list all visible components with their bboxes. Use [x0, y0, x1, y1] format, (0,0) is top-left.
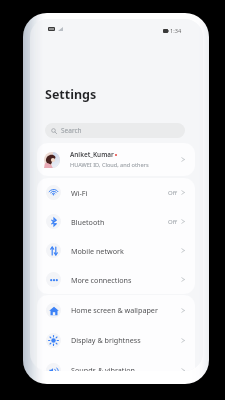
- staticText: HUAWEI ID, Cloud, and others: [70, 161, 149, 169]
- button[interactable]: Sounds & vibration: [37, 355, 195, 371]
- staticText: Display & brightness: [71, 335, 141, 345]
- button[interactable]: More connections: [37, 265, 195, 294]
- button[interactable]: Home screen & wallpaper: [37, 295, 195, 325]
- staticText: 1:34: [170, 27, 182, 35]
- staticText: Home screen & wallpaper: [71, 305, 158, 315]
- staticText: Settings: [45, 86, 97, 103]
- staticText: Off: [168, 218, 177, 226]
- button[interactable]: Aniket_Kumar: [37, 143, 195, 176]
- staticText: More connections: [71, 275, 132, 285]
- staticText: Bluetooth: [71, 217, 105, 227]
- button[interactable]: Wi-Fi: [37, 178, 195, 207]
- staticText: Mobile network: [71, 246, 124, 256]
- button[interactable]: Search: [45, 123, 185, 138]
- staticText: Sounds & vibration: [71, 365, 136, 371]
- staticText: Aniket_Kumar: [70, 150, 114, 159]
- button[interactable]: Display & brightness: [37, 325, 195, 355]
- staticText: Off: [168, 189, 177, 197]
- button[interactable]: Mobile network: [37, 236, 195, 265]
- button[interactable]: Bluetooth: [37, 207, 195, 236]
- staticText: Search: [61, 126, 82, 135]
- staticText: Wi-Fi: [71, 188, 88, 198]
